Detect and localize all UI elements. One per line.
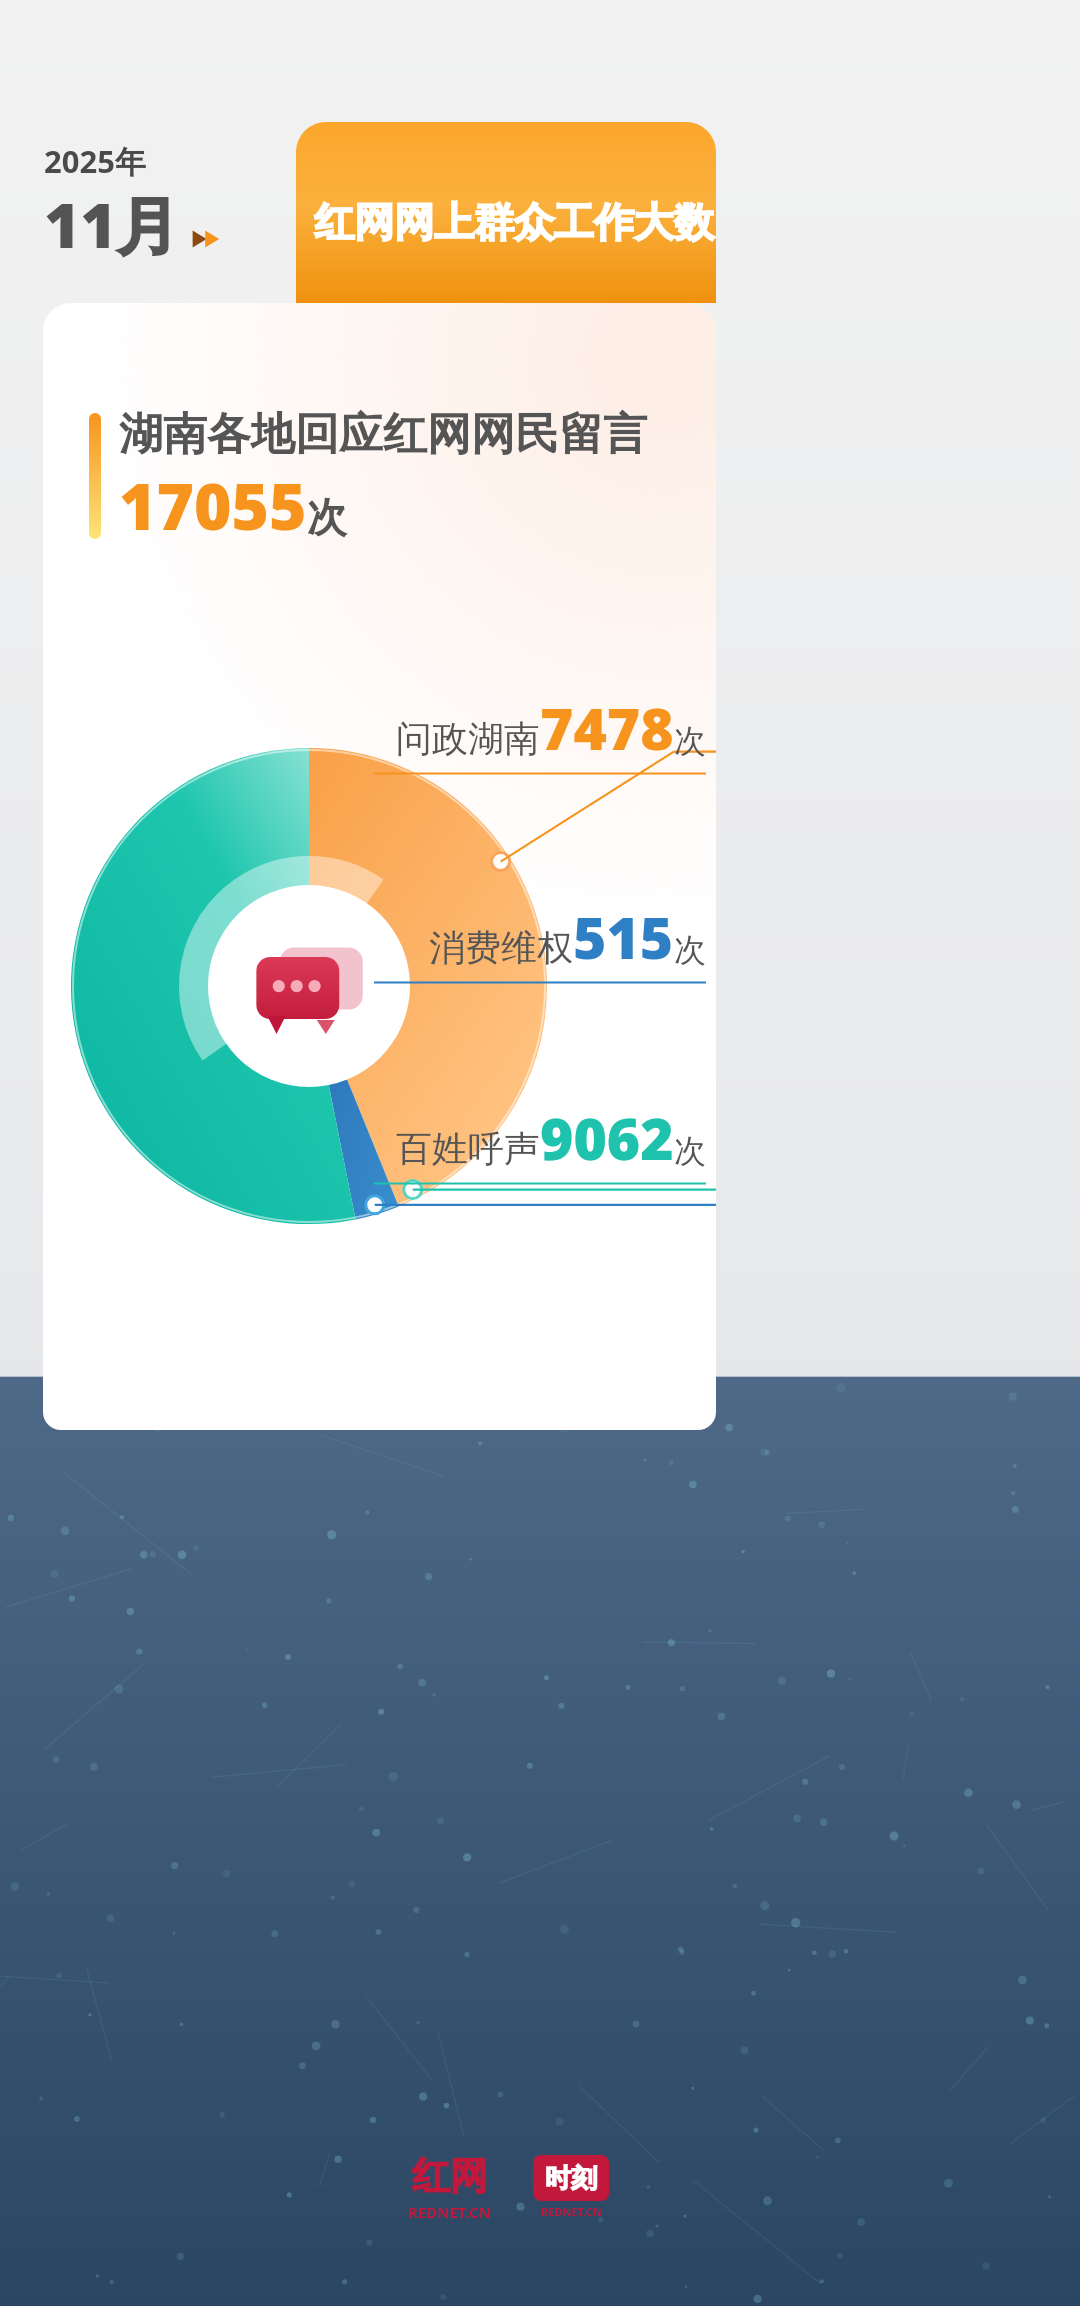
staticText: 湖南各地回应红网网民留言 (119, 407, 647, 462)
button[interactable]: 湖南各地回应红网网民留言 (89, 407, 647, 549)
staticText: 7478 (540, 689, 674, 767)
staticText: 红网 (412, 2152, 488, 2200)
staticText: REDNET.CN (541, 2204, 602, 2219)
other: 留言分类环形图 (53, 705, 716, 1267)
staticText: 次 (674, 721, 706, 761)
button[interactable]: 消费维权 (374, 898, 706, 984)
staticText: 次 (674, 930, 706, 970)
button[interactable]: 2025年 (44, 140, 225, 267)
staticText: 515 (573, 898, 674, 976)
staticText: 时刻 (545, 2162, 597, 2195)
button[interactable]: 红网网上群众工作大数据 (296, 122, 716, 303)
button[interactable]: 红网 REDNET.CN (408, 2152, 491, 2222)
staticText: 17055 (119, 462, 307, 549)
staticText: 2025年 (44, 140, 146, 182)
other: 展开 (189, 225, 225, 253)
button[interactable]: 时刻新闻 (533, 2155, 609, 2219)
staticText: 9062 (540, 1099, 674, 1177)
staticText: REDNET.CN (408, 2202, 491, 2222)
staticText: 次 (674, 1131, 706, 1171)
other: 留言 (253, 941, 365, 1035)
staticText: 红网网上群众工作大数据 (314, 197, 716, 247)
staticText: 11月 (44, 182, 179, 267)
button[interactable]: 百姓呼声 (374, 1099, 706, 1185)
staticText: 消费维权 (429, 925, 573, 970)
staticText: 问政湖南 (396, 716, 540, 761)
staticText: 次 (307, 492, 347, 542)
button[interactable]: 问政湖南 (374, 689, 706, 775)
staticText: 百姓呼声 (396, 1126, 540, 1171)
